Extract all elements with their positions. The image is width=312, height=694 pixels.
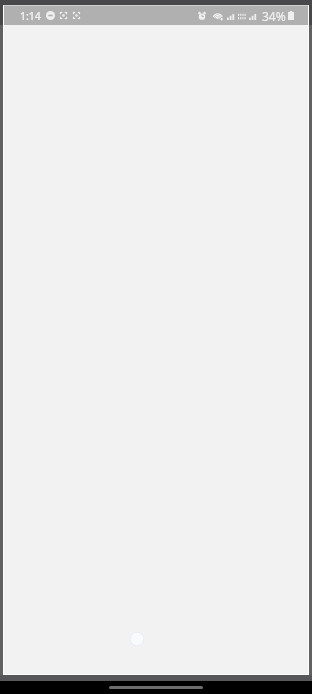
staticText: 34%	[262, 8, 286, 24]
button[interactable]: Status bar	[4, 6, 308, 25]
other: Loading	[127, 629, 147, 649]
other: Do not disturb	[46, 11, 55, 20]
button[interactable]: Home	[109, 686, 203, 689]
staticText: 1:14	[20, 9, 41, 23]
